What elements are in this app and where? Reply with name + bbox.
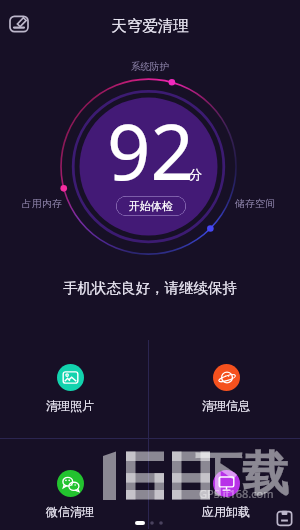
button[interactable]: 清理照片 [32,352,108,413]
staticText: 手机状态良好，请继续保持 [0,279,300,297]
staticText: 系统防护 [0,61,300,73]
staticText: 清理照片 [46,398,94,413]
staticText: 下载 [195,445,289,504]
button[interactable]: Feedback [9,14,29,34]
staticText: 天穹爱清理 [0,16,300,36]
staticText: 应用卸载 [202,504,250,519]
button[interactable]: 微信清理 [32,458,108,519]
staticText: 微信清理 [46,504,94,519]
staticText: 92 [107,99,194,203]
button[interactable]: 开始体检 [116,196,186,216]
staticText: 占用内存 [22,197,62,210]
button[interactable]: 应用卸载 [188,458,264,519]
button[interactable]: 清理信息 [188,352,264,413]
staticText: 开始体检 [129,199,173,213]
staticText: 储存空间 [235,197,275,210]
staticText: GPS.it168.com [199,486,274,501]
button[interactable]: Toolbox [276,510,293,527]
staticText: 清理信息 [202,398,250,413]
staticText: 分 [189,166,202,182]
